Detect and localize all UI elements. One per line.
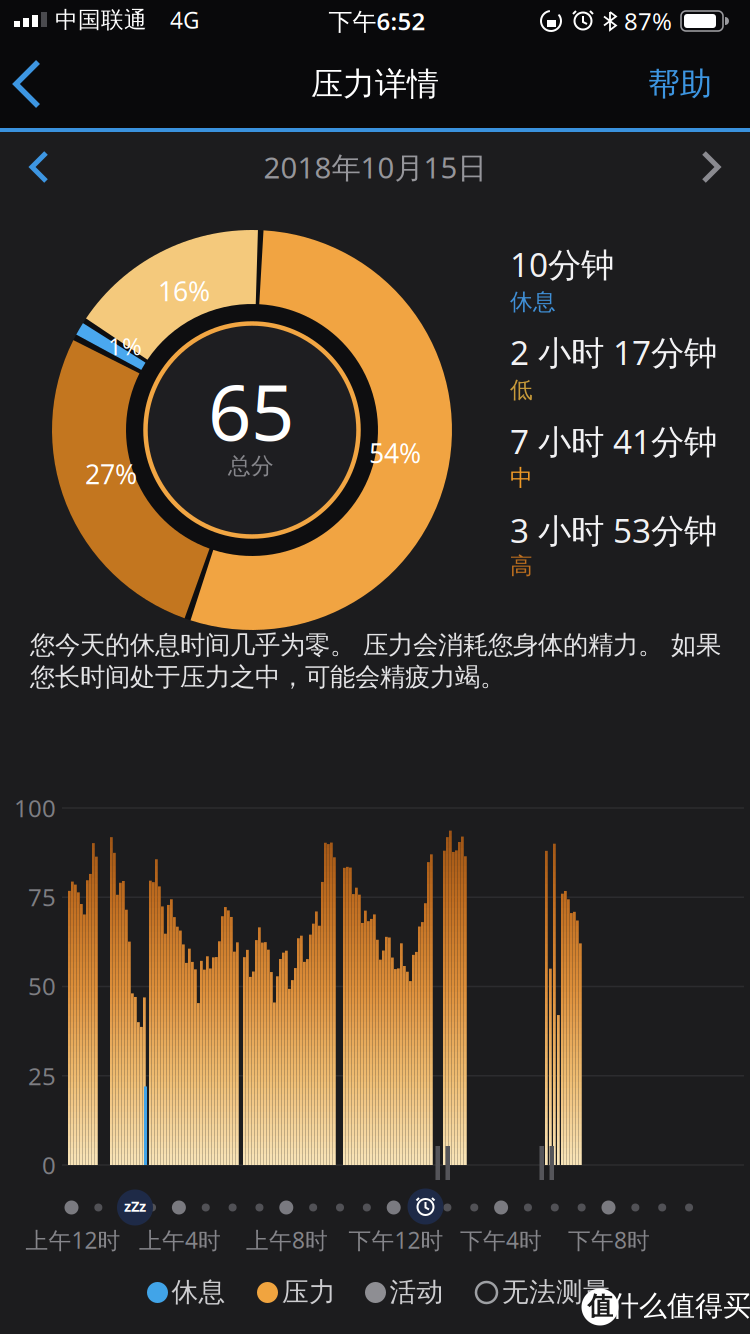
staticText: 27% — [85, 456, 137, 492]
staticText: 54% — [369, 435, 421, 471]
staticText: 高 — [510, 552, 533, 580]
staticText: 总分 — [228, 452, 274, 480]
staticText: 2 小时 17分钟 — [510, 330, 717, 374]
staticText: 下午8时 — [568, 1225, 650, 1255]
button[interactable]: 后一天 — [689, 145, 733, 189]
staticText: 1% — [108, 330, 142, 362]
staticText: 上午8时 — [246, 1225, 328, 1255]
staticText: 7 小时 41分钟 — [510, 419, 717, 463]
staticText: 无法测量 — [502, 1276, 610, 1308]
button[interactable]: 返回 — [0, 52, 57, 116]
staticText: 4G — [170, 5, 200, 35]
staticText: 活动 — [389, 1276, 443, 1308]
staticText: 您今天的休息时间几乎为零。 压力会消耗您身体的精力。 如果 — [30, 629, 721, 660]
staticText: 帮助 — [648, 64, 712, 104]
staticText: 什么值得买 — [611, 1289, 750, 1323]
staticText: 100 — [14, 792, 56, 824]
staticText: 低 — [510, 376, 533, 404]
staticText: 压力详情 — [311, 64, 439, 104]
staticText: 中国联通 — [55, 6, 147, 34]
staticText: 0 — [42, 1149, 56, 1181]
staticText: 下午4时 — [460, 1225, 542, 1255]
staticText: 下午6:52 — [328, 5, 425, 37]
staticText: 上午4时 — [139, 1225, 221, 1255]
button[interactable]: 帮助 — [632, 54, 728, 114]
staticText: 值 — [587, 1290, 612, 1321]
staticText: 87% — [624, 5, 672, 37]
staticText: 下午12时 — [348, 1225, 443, 1255]
staticText: 50 — [28, 970, 56, 1002]
button[interactable]: 前一天 — [17, 145, 61, 189]
staticText: 上午12时 — [25, 1225, 120, 1255]
staticText: 16% — [158, 273, 210, 309]
staticText: 2018年10月15日 — [263, 147, 486, 186]
staticText: 休息 — [171, 1276, 225, 1308]
staticText: 3 小时 53分钟 — [510, 508, 717, 552]
staticText: 10分钟 — [510, 242, 614, 286]
staticText: zZz — [124, 1196, 146, 1216]
staticText: 您长时间处于压力之中，可能会精疲力竭。 — [30, 661, 505, 692]
staticText: 休息 — [510, 288, 556, 316]
staticText: 75 — [28, 881, 56, 913]
staticText: 压力 — [282, 1276, 336, 1308]
staticText: 65 — [208, 360, 294, 461]
staticText: 25 — [28, 1060, 56, 1092]
staticText: 中 — [510, 464, 533, 492]
